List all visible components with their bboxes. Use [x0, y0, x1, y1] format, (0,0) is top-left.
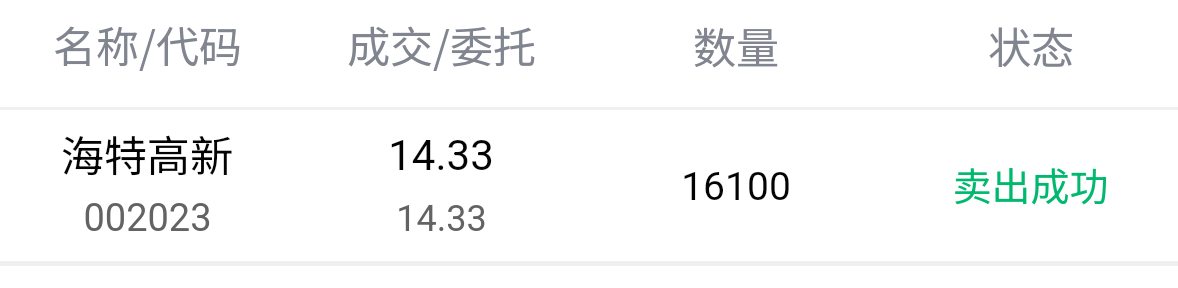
staticText: 002023	[83, 196, 212, 241]
button[interactable]: 海特高新	[0, 110, 1178, 261]
staticText: 14.33	[388, 131, 494, 180]
staticText: 海特高新	[61, 122, 233, 184]
staticText: 成交/委托	[347, 13, 536, 75]
button[interactable]: 名称/代码	[0, 0, 294, 107]
staticText: 状态	[988, 14, 1074, 76]
button[interactable]: 状态	[883, 0, 1178, 107]
button[interactable]: 数量	[588, 0, 883, 107]
staticText: 名称/代码	[53, 13, 242, 75]
staticText: 16100	[681, 164, 791, 210]
staticText: 14.33	[396, 198, 487, 240]
button[interactable]: 成交/委托	[294, 0, 588, 107]
staticText: 卖出成功	[952, 156, 1109, 212]
staticText: 数量	[693, 14, 779, 76]
